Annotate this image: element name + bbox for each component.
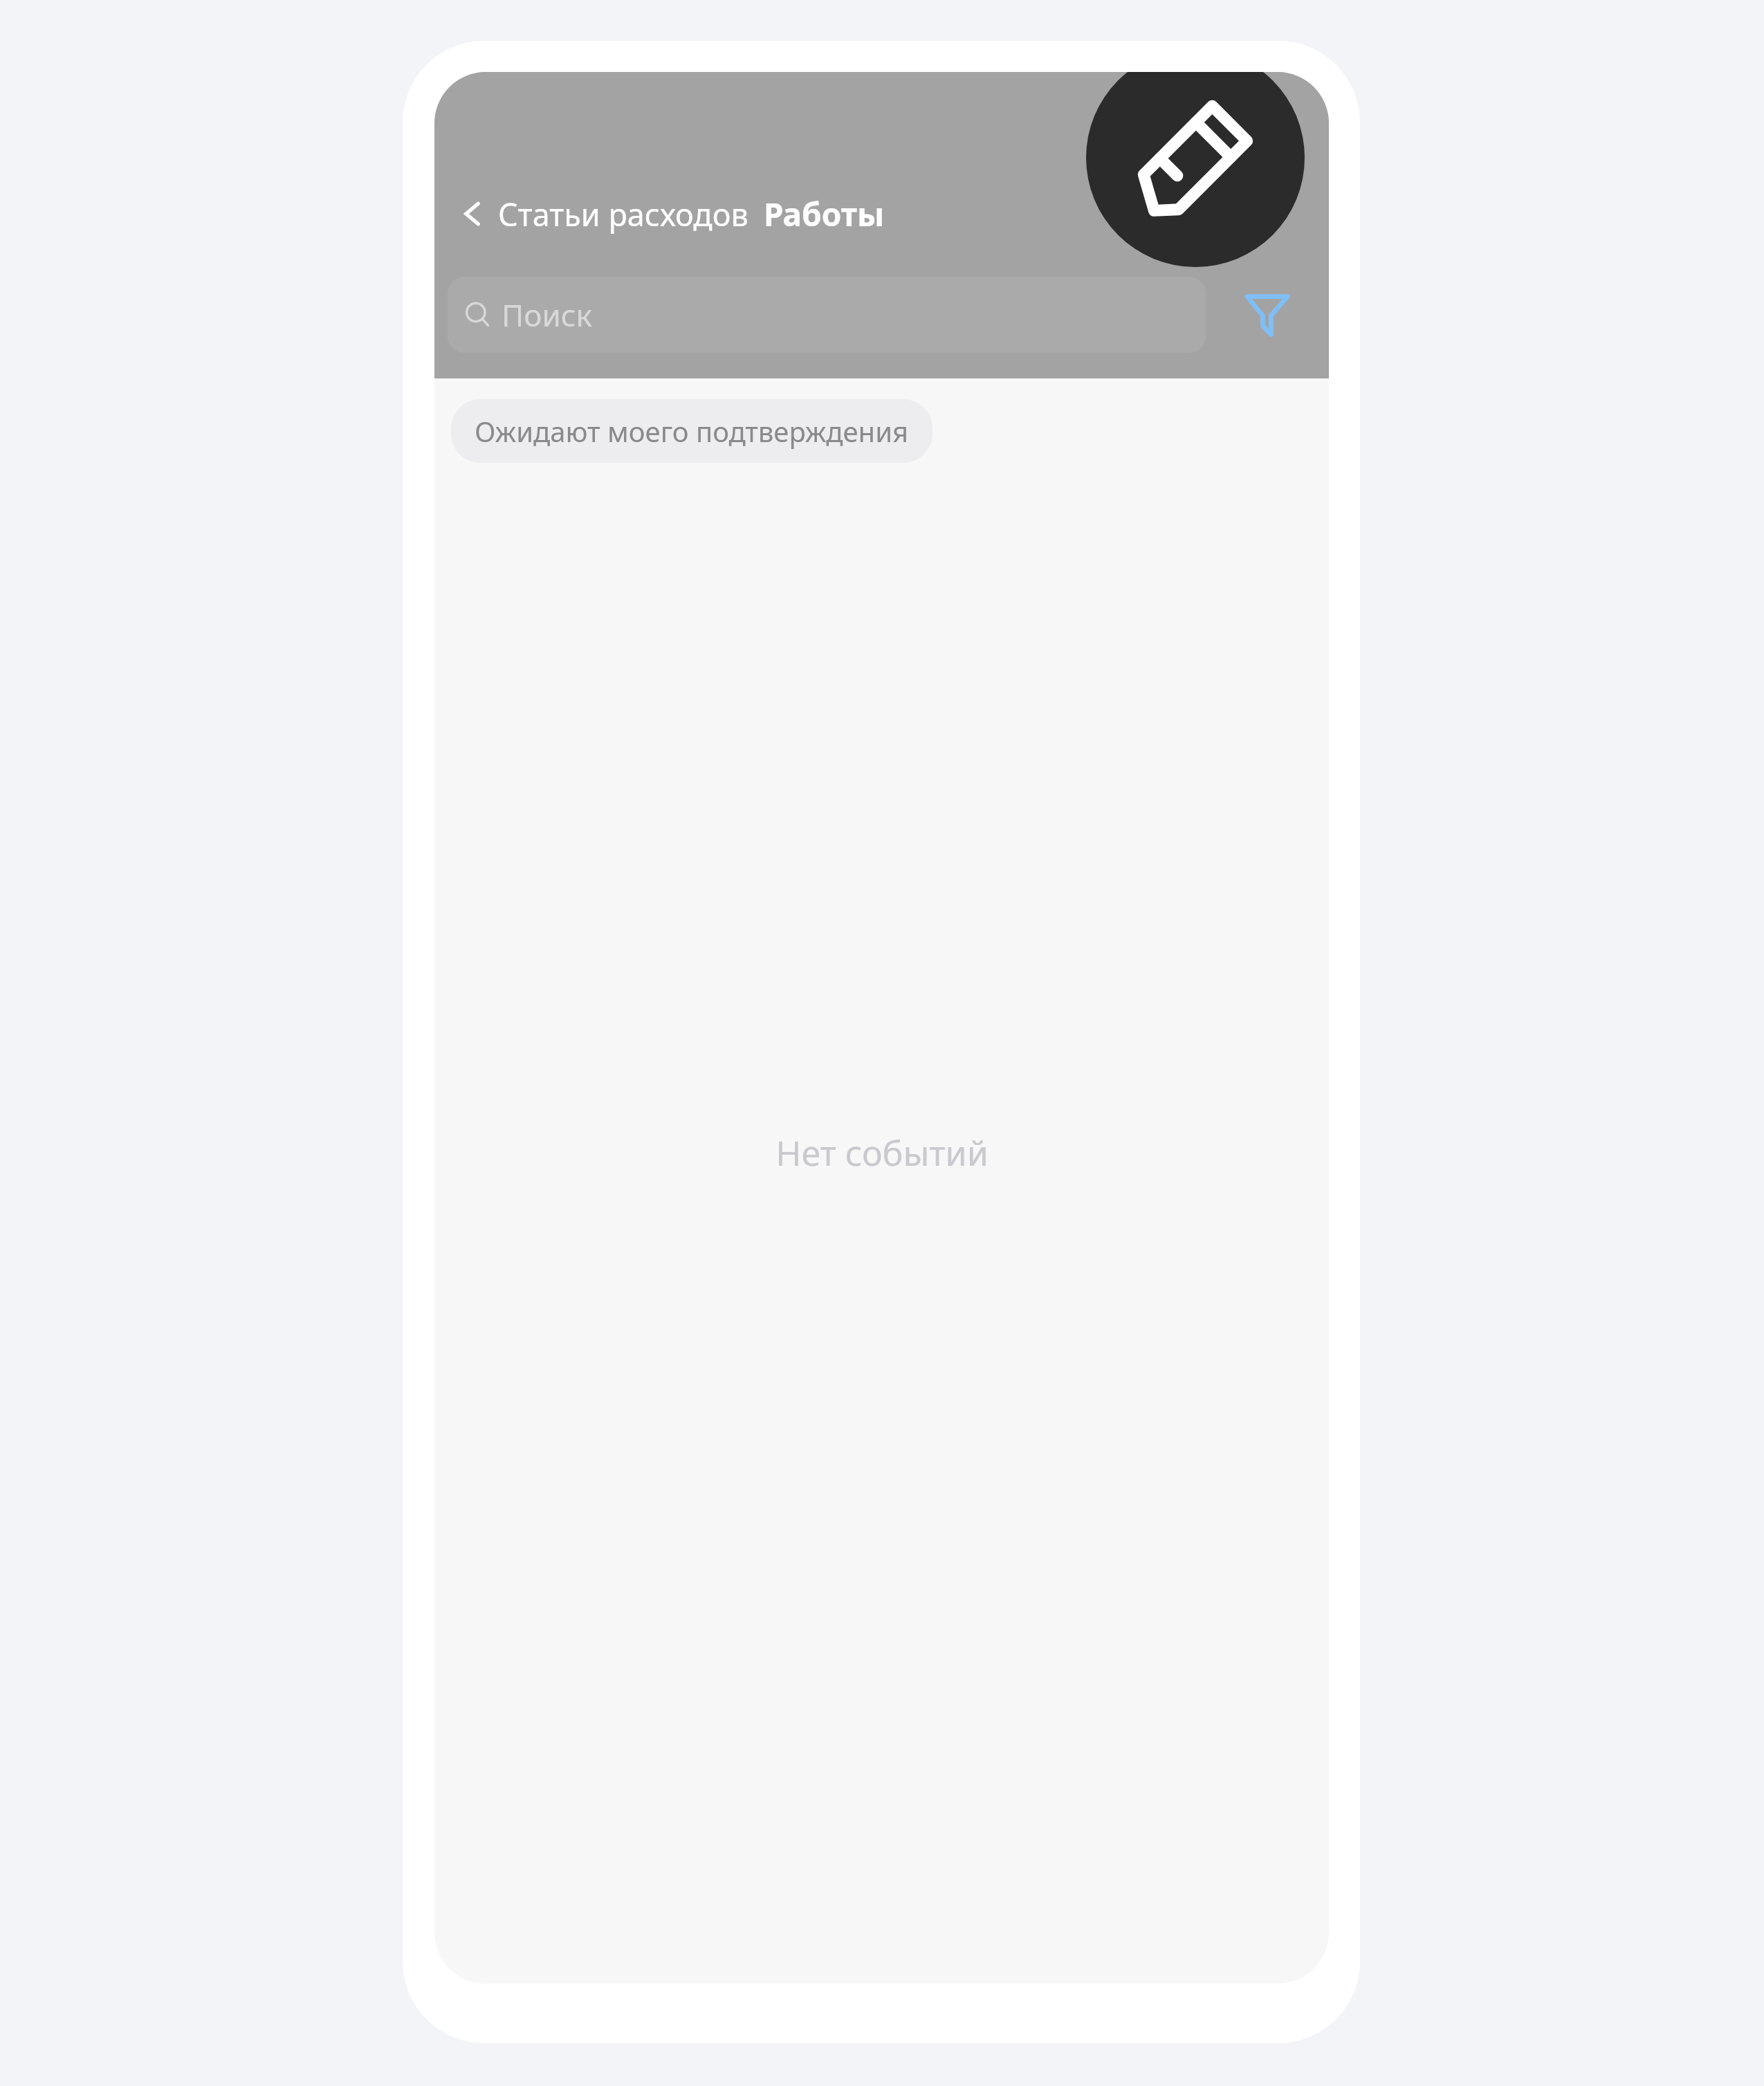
button[interactable]: Ожидают моего подтверждения	[451, 399, 932, 463]
staticText: Работы	[764, 192, 885, 236]
button[interactable]: Edit	[1086, 72, 1305, 267]
button[interactable]: Поиск	[448, 277, 1206, 353]
button[interactable]: Back	[448, 176, 896, 252]
other: Back	[457, 198, 488, 230]
staticText: Поиск	[502, 294, 592, 336]
staticText: Нет событий	[775, 1129, 989, 1176]
staticText: Ожидают моего подтверждения	[475, 412, 909, 450]
staticText: Статьи расходов	[498, 193, 748, 235]
button[interactable]: Filter	[1206, 277, 1329, 353]
